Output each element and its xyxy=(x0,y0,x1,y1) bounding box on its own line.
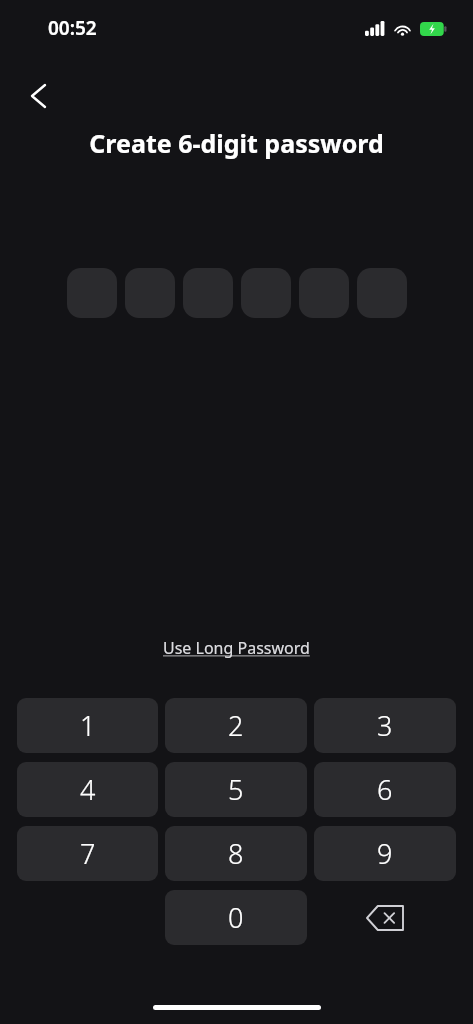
staticText: Create 6-digit password xyxy=(0,126,473,160)
staticText: 9 xyxy=(377,835,393,872)
button[interactable]: Use Long Password xyxy=(153,632,320,664)
staticText: 2 xyxy=(228,707,244,744)
staticText: 3 xyxy=(377,707,393,744)
button[interactable]: Delete xyxy=(356,890,414,945)
button[interactable]: 0 xyxy=(165,890,307,945)
button[interactable]: 4 xyxy=(17,762,158,817)
staticText: 6 xyxy=(377,771,393,808)
button[interactable]: 8 xyxy=(165,826,307,881)
button[interactable]: 6 xyxy=(314,762,456,817)
staticText: 0 xyxy=(228,899,244,936)
button[interactable]: 5 xyxy=(165,762,307,817)
staticText: 1 xyxy=(80,707,96,744)
staticText: 5 xyxy=(228,771,244,808)
button[interactable]: 3 xyxy=(314,698,456,753)
button[interactable]: 9 xyxy=(314,826,456,881)
button[interactable]: Back xyxy=(16,74,60,118)
staticText: 8 xyxy=(228,835,244,872)
button[interactable]: 1 xyxy=(17,698,158,753)
staticText: 00:52 xyxy=(48,15,97,41)
staticText: 4 xyxy=(80,771,96,808)
button[interactable]: 7 xyxy=(17,826,158,881)
staticText: Use Long Password xyxy=(163,637,310,659)
staticText: 7 xyxy=(80,835,96,872)
button[interactable]: 2 xyxy=(165,698,307,753)
